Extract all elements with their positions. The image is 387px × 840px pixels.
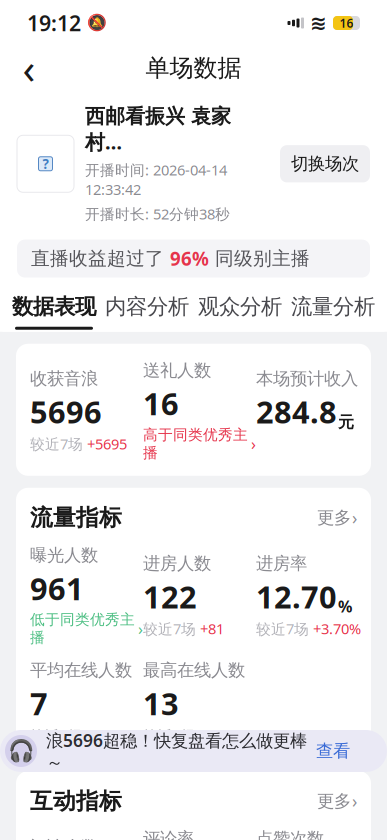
staticText: 96%	[170, 246, 209, 271]
button[interactable]: 🎧	[0, 730, 387, 772]
staticText: 更多	[317, 790, 351, 812]
staticText: 单场数据	[145, 53, 241, 83]
staticText: 较近7场	[30, 434, 83, 454]
button[interactable]: 更多	[317, 790, 357, 813]
staticText: 平均在线人数	[30, 660, 132, 681]
staticText: 切换场次	[291, 153, 359, 174]
staticText: +81	[200, 619, 224, 638]
staticText: 互动指标	[30, 787, 122, 815]
staticText: 流量分析	[291, 294, 375, 320]
staticText: 内容分析	[105, 294, 189, 320]
staticText: 元	[338, 412, 354, 432]
staticText: 观众分析	[198, 294, 282, 320]
staticText: 较近7场	[30, 726, 83, 745]
staticText: 评论人数	[30, 836, 98, 840]
staticText: 收获音浪	[30, 368, 98, 389]
staticText: 西邮看振兴 袁家村…	[85, 104, 231, 155]
button[interactable]: 流量分析	[286, 294, 379, 330]
staticText: 浪5696超稳！快复盘看怎么做更棒～	[46, 729, 307, 773]
staticText: 5696	[30, 391, 102, 432]
button[interactable]: 数据表现	[7, 294, 100, 330]
staticText: 低于同类优秀主播	[30, 611, 135, 647]
staticText: +3.70%	[313, 619, 361, 638]
staticText: ›	[352, 506, 357, 529]
button[interactable]: 切换场次	[280, 145, 370, 182]
staticText: 较近7场	[143, 726, 196, 745]
staticText: 点赞次数	[256, 828, 324, 840]
staticText: 高于同类优秀主播	[143, 426, 248, 462]
staticText: 🎧	[7, 739, 34, 763]
staticText: 进房人数	[143, 553, 211, 574]
staticText: 更多	[317, 507, 351, 528]
staticText: +5	[87, 726, 103, 745]
staticText: 122	[143, 576, 197, 617]
staticText: 较近7场	[256, 619, 309, 638]
staticText: 🔕	[87, 14, 107, 32]
staticText: 19:12	[27, 9, 81, 37]
staticText: 12.70	[256, 576, 337, 617]
staticText: 送礼人数	[143, 360, 211, 381]
staticText: 本场预计收入	[256, 368, 358, 389]
staticText: 查看	[316, 740, 350, 762]
staticText: 评论率	[143, 828, 194, 840]
staticText: ›	[251, 433, 256, 454]
staticText: 曝光人数	[30, 545, 98, 566]
staticText: ?	[42, 155, 48, 173]
staticText: 16	[339, 15, 353, 31]
staticText: 开播时长: 52分钟38秒	[85, 204, 230, 224]
staticText: +5695	[87, 434, 127, 454]
staticText: ≋	[310, 12, 327, 34]
staticText: 较近7场	[143, 619, 196, 638]
staticText: ‹	[22, 41, 35, 95]
staticText: 7	[30, 683, 48, 724]
staticText: 284.8	[256, 391, 337, 432]
button[interactable]: 返回	[6, 46, 52, 90]
staticText: 开播时间: 2026-04-14 12:33:42	[85, 160, 227, 199]
staticText: 961	[30, 568, 84, 609]
staticText: 流量指标	[30, 504, 122, 532]
staticText: +8	[200, 726, 216, 745]
staticText: 直播收益超过了	[31, 247, 170, 270]
staticText: ›	[138, 618, 143, 639]
staticText: 最高在线人数	[143, 660, 245, 681]
staticText: 数据表现	[12, 294, 96, 320]
staticText: 进房率	[256, 553, 307, 574]
staticText: 13	[143, 683, 179, 724]
staticText: 同级别主播	[209, 247, 310, 270]
staticText: ›	[352, 790, 357, 813]
button[interactable]: 内容分析	[100, 294, 193, 330]
staticText: %	[338, 596, 352, 617]
staticText: 16	[143, 383, 179, 424]
button[interactable]: 观众分析	[193, 294, 286, 330]
button[interactable]: 更多	[317, 506, 357, 529]
